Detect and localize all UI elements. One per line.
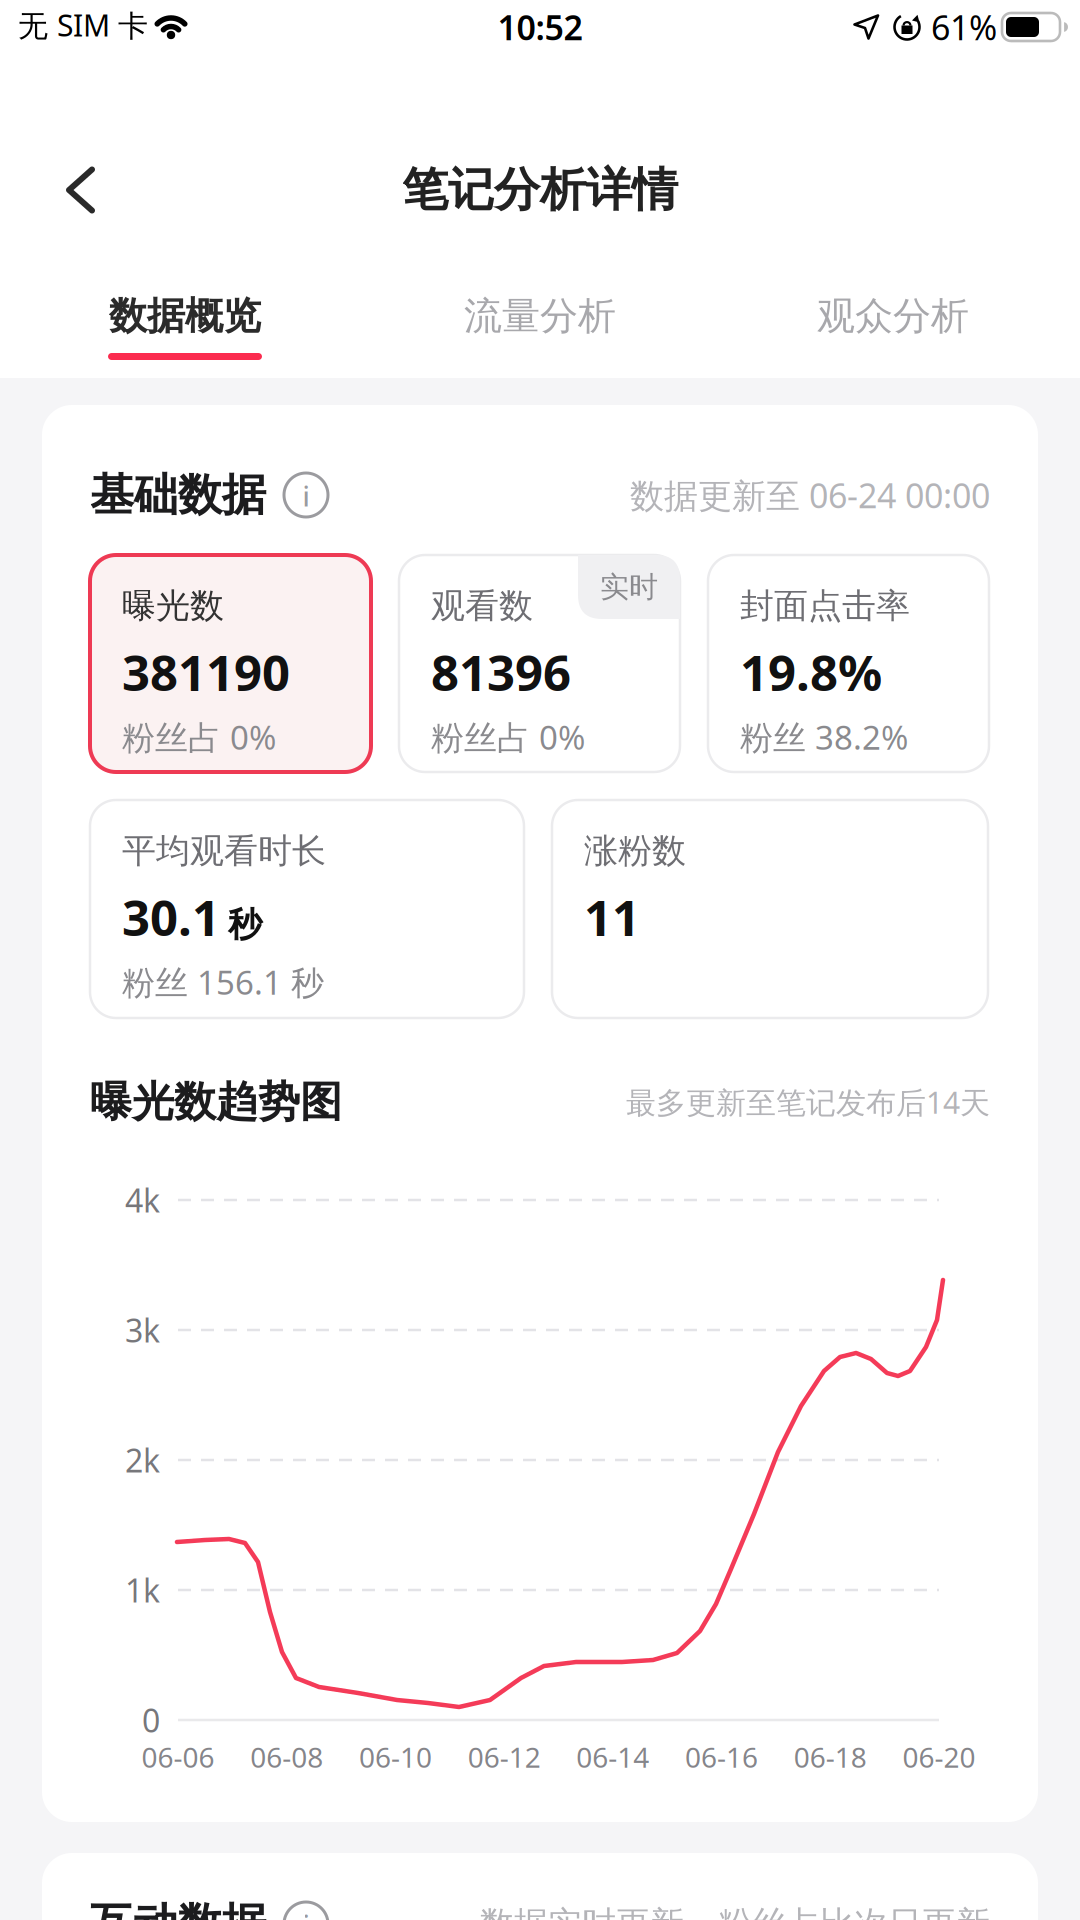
staticText: 10:52 [497, 4, 582, 50]
staticText: 数据实时更新，粉丝占比次日更新 [480, 1903, 990, 1920]
staticText: 1k [125, 1569, 160, 1611]
staticText: 粉丝占 0% [431, 715, 585, 759]
staticText: 互动数据 [90, 1897, 266, 1920]
button[interactable]: 数据概览 [109, 283, 261, 349]
staticText: 81396 [431, 639, 571, 705]
staticText: 381190 [122, 639, 290, 705]
staticText: 06-20 [902, 1738, 975, 1776]
staticText: 06-14 [576, 1738, 649, 1776]
staticText: 无 SIM 卡 [18, 5, 148, 45]
button[interactable]: 说明 [284, 1902, 328, 1920]
staticText: 30.1 [122, 884, 220, 950]
button[interactable]: 返回 [36, 153, 126, 227]
button[interactable]: 涨粉数 [552, 800, 988, 1018]
staticText: 06-12 [468, 1738, 541, 1776]
staticText: 4k [125, 1179, 160, 1221]
staticText: 06-06 [141, 1738, 214, 1776]
button[interactable]: 流量分析 [464, 283, 616, 349]
staticText: 2k [125, 1439, 160, 1481]
staticText: 最多更新至笔记发布后14天 [626, 1082, 990, 1122]
staticText: 数据概览 [109, 293, 261, 339]
staticText: 19.8% [740, 639, 882, 705]
staticText: 11 [584, 884, 640, 950]
staticText: 粉丝 38.2% [740, 715, 908, 759]
staticText: 61% [931, 4, 997, 50]
button[interactable]: 观众分析 [817, 283, 969, 349]
staticText: 平均观看时长 [122, 830, 326, 872]
staticText: 粉丝占 0% [122, 715, 276, 759]
staticText: 曝光数 [122, 585, 224, 627]
button[interactable]: 实时 [399, 555, 680, 772]
staticText: 06-16 [685, 1738, 758, 1776]
staticText: 观众分析 [817, 293, 969, 339]
staticText: 0 [142, 1699, 160, 1741]
button[interactable]: 说明 [284, 473, 328, 517]
button[interactable]: 曝光数 [90, 555, 371, 772]
staticText: 数据更新至 06-24 00:00 [630, 472, 990, 518]
staticText: 3k [125, 1309, 160, 1351]
staticText: 06-10 [359, 1738, 432, 1776]
button[interactable]: 平均观看时长 [90, 800, 524, 1018]
staticText: 实时 [600, 569, 658, 605]
staticText: i [302, 1907, 309, 1920]
staticText: 基础数据 [90, 468, 266, 522]
staticText: 涨粉数 [584, 830, 686, 872]
staticText: i [302, 478, 309, 514]
staticText: 曝光数趋势图 [90, 1076, 342, 1128]
staticText: 观看数 [431, 585, 533, 627]
staticText: 06-18 [794, 1738, 867, 1776]
staticText: 笔记分析详情 [402, 162, 678, 218]
staticText: 流量分析 [464, 293, 616, 339]
staticText: 秒 [228, 904, 262, 946]
staticText: 粉丝 156.1 秒 [122, 960, 324, 1004]
staticText: 封面点击率 [740, 585, 910, 627]
button[interactable]: 封面点击率 [708, 555, 989, 772]
staticText: 06-08 [250, 1738, 323, 1776]
